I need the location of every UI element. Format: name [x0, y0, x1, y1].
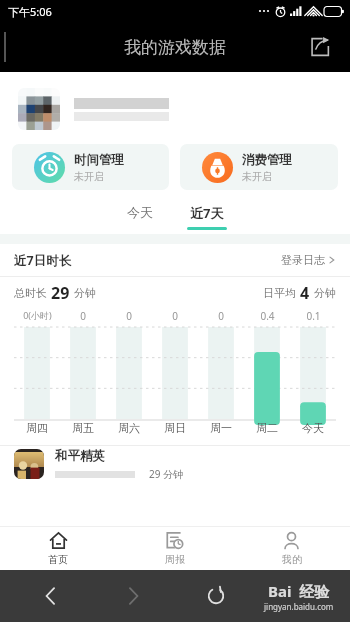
staticText: 周六: [118, 421, 140, 435]
staticText: 0.1: [306, 309, 321, 323]
staticText: 近7天: [190, 204, 224, 222]
staticText: jingyan.baidu.com: [264, 601, 334, 612]
staticText: 4: [300, 282, 310, 304]
button[interactable]: Share: [300, 27, 340, 67]
button[interactable]: Refresh: [174, 570, 257, 622]
staticText: 0.4: [260, 309, 275, 323]
staticText: 消费管理: [242, 152, 292, 168]
button[interactable]: 首页: [0, 526, 116, 570]
staticText: 0: [218, 309, 224, 323]
staticText: 周一: [210, 421, 232, 435]
staticText: 近7日时长: [14, 252, 72, 269]
staticText: 0: [172, 309, 178, 323]
staticText: 周五: [72, 421, 94, 435]
staticText: 29: [51, 282, 70, 304]
staticText: 0(小时): [23, 309, 52, 321]
button[interactable]: 和平精英: [14, 446, 336, 482]
staticText: 时间管理: [74, 152, 124, 168]
button[interactable]: Back: [10, 570, 92, 622]
staticText: 未开启: [74, 170, 104, 183]
button[interactable]: 我的: [233, 526, 350, 570]
staticText: 0: [126, 309, 132, 323]
staticText: 分钟: [74, 286, 96, 300]
staticText: 未开启: [242, 170, 272, 183]
button[interactable]: 消费管理: [180, 144, 338, 190]
staticText: 登录日志: [281, 253, 325, 267]
staticText: 日平均: [263, 286, 296, 300]
staticText: 和平精英: [55, 448, 105, 464]
staticText: 总时长: [14, 286, 47, 300]
button[interactable]: 近7天: [179, 204, 235, 230]
staticText: 周四: [26, 421, 48, 435]
staticText: 我的游戏数据: [124, 37, 226, 58]
staticText: 29 分钟: [149, 467, 184, 481]
staticText: 周二: [256, 421, 278, 435]
button[interactable]: 时间管理: [12, 144, 169, 190]
staticText: 周报: [165, 553, 185, 566]
staticText: 我的: [282, 553, 302, 566]
button[interactable]: Forward: [92, 570, 174, 622]
staticText: 下午5:06: [8, 4, 52, 19]
button[interactable]: 周报: [116, 526, 233, 570]
staticText: 首页: [48, 553, 68, 566]
staticText: 今天: [127, 204, 153, 220]
staticText: 分钟: [314, 286, 336, 300]
button[interactable]: 登录日志: [281, 253, 336, 267]
button[interactable]: 今天: [115, 204, 165, 220]
staticText: Bai 经验: [268, 581, 330, 601]
staticText: 周日: [164, 421, 186, 435]
staticText: 今天: [302, 421, 324, 435]
staticText: 0: [80, 309, 86, 323]
button[interactable]: [18, 88, 332, 130]
